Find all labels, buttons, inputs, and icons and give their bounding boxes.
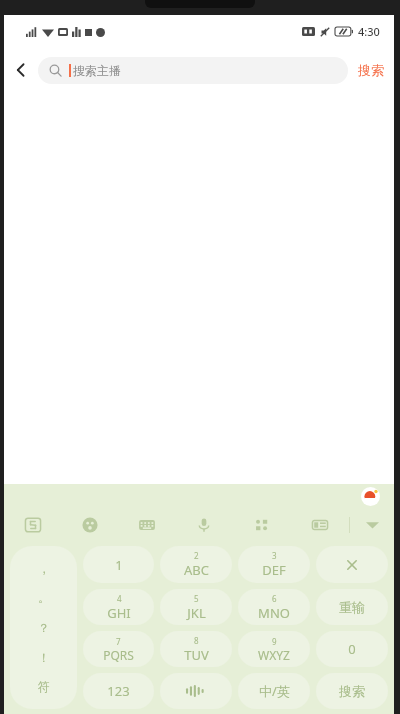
staticText: DEF (262, 561, 286, 579)
staticText: 7 (116, 636, 121, 647)
staticText: 6 (272, 593, 277, 604)
staticText: 搜索 (358, 62, 384, 78)
button[interactable]: 123 (83, 673, 154, 709)
staticText: 符 (38, 679, 50, 694)
staticText: ？ (38, 620, 50, 635)
staticText: ABC (184, 561, 209, 579)
staticText: GHI (107, 604, 131, 622)
staticText: 搜索 (339, 683, 365, 699)
staticText: 。 (38, 590, 50, 605)
staticText: MNO (258, 604, 290, 622)
staticText: PQRS (103, 647, 134, 663)
button[interactable]: 1 (83, 546, 154, 583)
staticText: 4 (117, 593, 122, 604)
button[interactable]: 重输 (316, 589, 388, 625)
button[interactable]: 6 (238, 589, 310, 625)
button[interactable]: 7 (83, 631, 154, 667)
button[interactable]: Apps (233, 508, 291, 541)
staticText: TUV (184, 646, 209, 664)
button[interactable]: Emoji (61, 508, 118, 541)
button[interactable] (160, 673, 232, 709)
staticText: 0 (348, 640, 356, 658)
button[interactable]: 3 (238, 546, 310, 583)
staticText: 8 (194, 635, 199, 646)
staticText: 3 (272, 550, 277, 561)
button[interactable]: Voice (175, 508, 233, 541)
button[interactable] (316, 546, 388, 583)
button[interactable]: 4 (83, 589, 154, 625)
staticText: 4:30 (358, 24, 380, 39)
button[interactable]: Hide keyboard (350, 508, 394, 541)
staticText: ！ (38, 650, 50, 665)
button[interactable]: 0 (316, 631, 388, 667)
button[interactable]: ， (10, 546, 77, 709)
button[interactable]: 5 (160, 589, 232, 625)
button[interactable]: Sogou (4, 508, 61, 541)
staticText: ， (38, 561, 50, 576)
button[interactable]: 搜索 (358, 48, 384, 92)
button[interactable]: Assistant (361, 487, 380, 506)
staticText: 中/英 (259, 682, 290, 700)
staticText: WXYZ (258, 647, 290, 663)
staticText: 搜索主播 (73, 63, 121, 78)
button[interactable]: 搜索主播 (38, 57, 348, 84)
staticText: 1 (115, 556, 123, 574)
staticText: 5 (194, 593, 199, 604)
button[interactable]: 9 (238, 631, 310, 667)
staticText: JKL (187, 604, 206, 622)
button[interactable]: 搜索 (316, 673, 388, 709)
button[interactable]: 中/英 (238, 673, 310, 709)
button[interactable]: Clipboard (291, 508, 349, 541)
staticText: 2 (194, 550, 199, 561)
button[interactable]: Back (4, 48, 38, 92)
button[interactable]: Keyboard (118, 508, 175, 541)
staticText: 重输 (339, 599, 365, 615)
staticText: 9 (272, 636, 277, 647)
button[interactable]: 8 (160, 631, 232, 667)
button[interactable]: 2 (160, 546, 232, 583)
staticText: 123 (107, 682, 130, 700)
